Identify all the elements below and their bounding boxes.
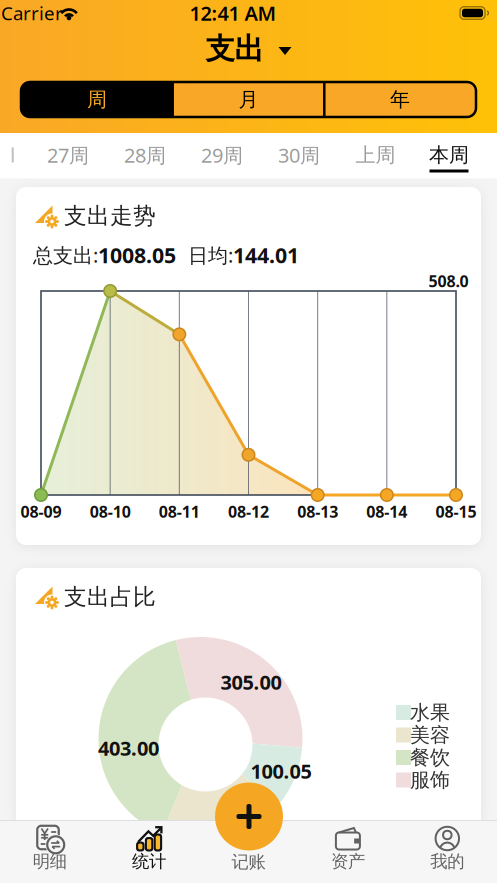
button[interactable]: 明细 — [0, 820, 99, 883]
staticText: 水果 — [410, 700, 450, 725]
button[interactable]: 27周 — [38, 135, 98, 175]
staticText: 08-13 — [297, 501, 338, 522]
staticText: 08-09 — [20, 501, 61, 522]
staticText: 100.05 — [250, 758, 311, 784]
staticText: 年 — [390, 87, 410, 112]
staticText: 508.0 — [428, 270, 468, 292]
staticText: 支出 — [205, 31, 263, 67]
staticText: 08-11 — [159, 501, 200, 522]
staticText: 144.01 — [233, 241, 299, 269]
staticText: 本周 — [429, 143, 469, 167]
staticText: 支出走势 — [64, 202, 156, 230]
button[interactable]: 支出 — [205, 31, 291, 67]
staticText: Carrier — [1, 1, 63, 25]
button[interactable]: 记账 — [199, 850, 298, 874]
staticText: 08-14 — [366, 501, 407, 522]
staticText: 12:41 AM — [189, 0, 276, 26]
staticText: 美容 — [410, 723, 450, 747]
staticText: 我的 — [430, 851, 464, 872]
staticText: 1008.05 — [98, 241, 176, 269]
staticText: 上周 — [355, 143, 395, 167]
staticText: 08-15 — [435, 501, 476, 522]
button[interactable]: 年 — [325, 82, 475, 117]
staticText: 28周 — [124, 142, 166, 168]
staticText: 08-10 — [90, 501, 131, 522]
staticText: 资产 — [331, 851, 365, 872]
staticText: 29周 — [201, 142, 243, 168]
staticText: 统计 — [132, 851, 166, 872]
staticText: 305.00 — [220, 669, 281, 695]
staticText: 08-12 — [228, 501, 269, 522]
button[interactable]: 周 — [22, 82, 172, 117]
button[interactable]: 上周 — [345, 135, 405, 175]
button[interactable] — [215, 782, 283, 850]
button[interactable]: 30周 — [269, 135, 329, 175]
button[interactable]: 28周 — [115, 135, 175, 175]
staticText: 27周 — [47, 142, 89, 168]
button[interactable]: 月 — [173, 82, 323, 117]
staticText: 月 — [238, 87, 258, 112]
staticText: 403.00 — [98, 735, 159, 761]
staticText: 周 — [87, 87, 107, 112]
staticText: 总支出: — [33, 242, 98, 268]
staticText: 支出占比 — [64, 583, 156, 611]
button[interactable]: 29周 — [192, 135, 252, 175]
button[interactable]: 资产 — [298, 820, 397, 883]
staticText: 服饰 — [410, 768, 450, 792]
button[interactable]: 本周 — [419, 135, 479, 175]
staticText: 30周 — [278, 142, 320, 168]
staticText: 明细 — [33, 851, 67, 872]
staticText: 日均: — [176, 242, 233, 268]
button[interactable]: 统计 — [100, 820, 199, 883]
button[interactable]: 我的 — [398, 820, 497, 883]
staticText: 餐饮 — [410, 745, 450, 770]
staticText: 记账 — [231, 851, 265, 873]
